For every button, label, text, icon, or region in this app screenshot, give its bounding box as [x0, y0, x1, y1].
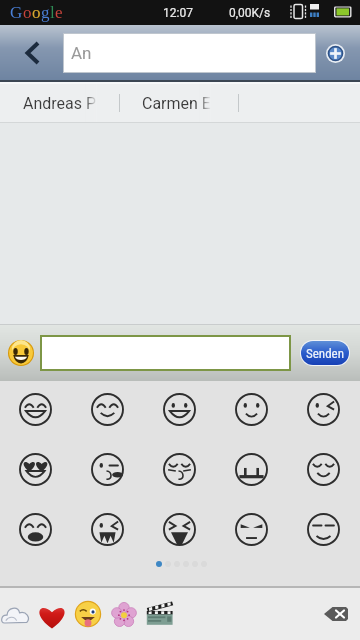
staticText: 12:07 — [163, 6, 193, 20]
staticText: Carmen E — [142, 94, 211, 113]
button[interactable]: Heart — [34, 592, 70, 636]
button[interactable]: Senden — [301, 341, 349, 365]
button[interactable]: Back — [0, 25, 58, 80]
button[interactable]: Emoji 9 — [215, 439, 287, 499]
button[interactable]: Emoji 10 — [287, 439, 359, 499]
button[interactable]: Emoji 13 — [143, 499, 215, 559]
staticText: o — [23, 3, 32, 22]
button[interactable]: Faces — [70, 592, 106, 636]
button[interactable]: Clouds — [0, 592, 34, 636]
button[interactable]: Emoji 5 — [287, 379, 359, 439]
button[interactable]: Emoji 2 — [71, 379, 143, 439]
staticText: An — [71, 43, 92, 63]
button[interactable]: Emoji 4 — [215, 379, 287, 439]
button[interactable]: Emoji 14 — [215, 499, 287, 559]
staticText: g — [41, 3, 50, 22]
button[interactable]: Backspace — [318, 596, 354, 632]
button[interactable]: Emoji 3 — [143, 379, 215, 439]
staticText: l — [50, 3, 55, 22]
button[interactable]: Emoji 6 — [0, 439, 71, 499]
button[interactable]: Emoji 11 — [0, 499, 71, 559]
button[interactable]: Emoji 1 — [0, 379, 71, 439]
button[interactable]: Emoji keyboard — [4, 336, 38, 370]
button[interactable]: Emoji 8 — [143, 439, 215, 499]
button[interactable]: An — [64, 34, 315, 72]
button[interactable]: Carmen E — [142, 94, 211, 113]
staticText: Senden — [306, 346, 344, 361]
button[interactable]: Andreas P — [23, 94, 97, 113]
button[interactable]: Emoji 7 — [71, 439, 143, 499]
button[interactable]: Flowers — [106, 592, 142, 636]
staticText: G — [10, 3, 23, 22]
staticText: Andreas P — [23, 94, 97, 113]
button[interactable]: Add recipient — [319, 37, 351, 69]
button[interactable]: Emoji 12 — [71, 499, 143, 559]
staticText: e — [55, 3, 63, 22]
staticText: 0,00K/s — [229, 6, 271, 20]
button[interactable]: Movies — [142, 592, 178, 636]
staticText: o — [32, 3, 41, 22]
button[interactable]: Emoji 15 — [287, 499, 359, 559]
